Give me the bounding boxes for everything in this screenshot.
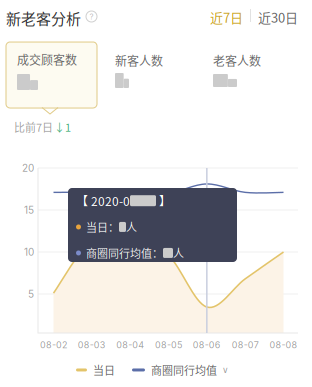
staticText: 商圈同行均值： bbox=[86, 245, 163, 261]
staticText: 新客人数 bbox=[115, 52, 163, 69]
button[interactable]: 近30日 bbox=[258, 8, 306, 26]
staticText: 人 bbox=[173, 245, 184, 261]
button[interactable]: 新客人数 bbox=[115, 52, 205, 102]
staticText: 08-06 bbox=[193, 340, 221, 350]
staticText: 近30日 bbox=[258, 8, 298, 26]
staticText: 10 bbox=[24, 246, 34, 258]
staticText: 08-04 bbox=[116, 340, 144, 350]
staticText: ↓1 bbox=[54, 119, 71, 135]
staticText: ? bbox=[89, 12, 93, 21]
staticText: ∨ bbox=[222, 365, 229, 375]
staticText: 新老客分析 bbox=[6, 7, 81, 29]
staticText: 15 bbox=[24, 204, 34, 216]
staticText: 】 bbox=[156, 192, 171, 209]
button[interactable]: 近7日 bbox=[210, 8, 250, 26]
staticText: 08-08 bbox=[269, 340, 297, 350]
staticText: 20 bbox=[22, 162, 34, 174]
staticText: 人 bbox=[126, 219, 137, 235]
staticText: 成交顾客数 bbox=[17, 51, 77, 68]
button[interactable]: 老客人数 bbox=[213, 52, 303, 102]
staticText: 当日 bbox=[93, 362, 115, 378]
staticText: 08-05 bbox=[155, 340, 182, 350]
staticText: 08-07 bbox=[232, 340, 259, 350]
staticText: 老客人数 bbox=[213, 52, 261, 69]
staticText: 比前7日 bbox=[14, 119, 53, 135]
staticText: 近7日 bbox=[210, 8, 243, 26]
button[interactable]: 成交顾客数 bbox=[6, 42, 97, 108]
staticText: 08-03 bbox=[78, 340, 106, 350]
staticText: 商圈同行均值 bbox=[151, 362, 217, 378]
staticText: 5 bbox=[28, 288, 34, 300]
staticText: 当日： bbox=[86, 219, 119, 235]
staticText: 【 2020-0 bbox=[76, 192, 130, 209]
button[interactable]: 说明 bbox=[86, 11, 97, 22]
staticText: 08-02 bbox=[40, 340, 67, 350]
